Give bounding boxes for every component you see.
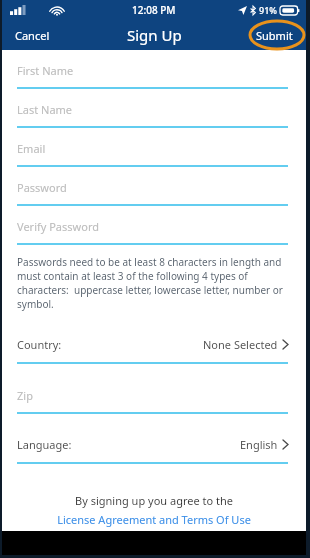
staticText: By signing up you agree to the [75, 493, 233, 508]
staticText: Passwords need to be at least 8 characte… [17, 255, 294, 311]
button[interactable]: Last Name [2, 89, 306, 128]
button[interactable]: Verify Password [2, 206, 306, 245]
staticText: Submit [256, 28, 293, 43]
other: Submit highlight [0, 0, 310, 558]
staticText: Cancel [15, 28, 50, 43]
staticText: Last Name [17, 102, 73, 117]
staticText: First Name [17, 63, 74, 78]
staticText: Sign Up [127, 25, 182, 45]
button[interactable]: Language: [2, 425, 306, 464]
staticText: 12:08 PM [132, 3, 176, 17]
staticText: Zip [17, 388, 33, 403]
button[interactable]: Zip [2, 375, 306, 414]
staticText: Verify Password [17, 219, 99, 234]
staticText: None Selected [203, 337, 278, 352]
staticText: Country: [17, 337, 62, 352]
staticText: Language: [17, 437, 72, 452]
button[interactable]: License Agreement and Terms Of Use [53, 511, 255, 528]
staticText: 91% [259, 4, 277, 16]
staticText: English [240, 437, 278, 452]
button[interactable]: Submit [243, 22, 306, 49]
staticText: Email [17, 141, 46, 156]
button[interactable]: Cancel [2, 22, 63, 49]
button[interactable]: Password [2, 167, 306, 206]
button[interactable]: Country: [2, 325, 306, 364]
staticText: Password [17, 180, 67, 195]
button[interactable]: First Name [2, 50, 306, 89]
button[interactable]: Email [2, 128, 306, 167]
staticText: License Agreement and Terms Of Use [57, 512, 251, 527]
